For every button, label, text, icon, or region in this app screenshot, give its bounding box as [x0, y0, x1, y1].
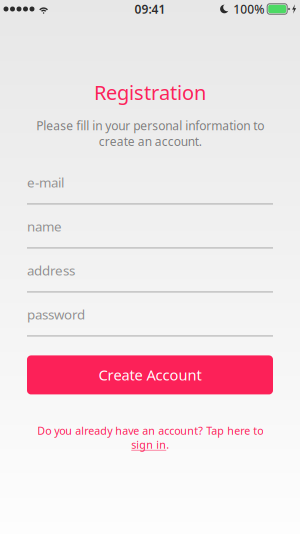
button[interactable]: Create Account	[27, 355, 273, 394]
staticText: 09:41	[134, 1, 165, 17]
staticText: Registration	[94, 79, 206, 106]
button[interactable]: address	[27, 248, 273, 292]
staticText: Do you already have an account? Tap here…	[37, 423, 263, 452]
button[interactable]: e-mail	[27, 160, 273, 204]
button[interactable]: Do you already have an account? Tap here…	[34, 423, 266, 452]
staticText: password	[27, 305, 85, 323]
button[interactable]: password	[27, 292, 273, 336]
staticText: Create Account	[98, 365, 201, 385]
staticText: e-mail	[27, 173, 64, 191]
staticText: Please fill in your personal information…	[36, 118, 264, 149]
staticText: 100%	[233, 1, 264, 17]
staticText: address	[27, 261, 75, 279]
button[interactable]: name	[27, 204, 273, 248]
staticText: name	[27, 217, 62, 235]
